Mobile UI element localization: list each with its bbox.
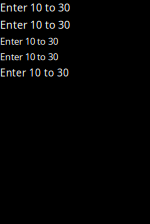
staticText: Enter 10 to 30 bbox=[0, 66, 69, 79]
staticText: Enter 10 to 30 bbox=[0, 0, 70, 14]
staticText: Enter 10 to 30 bbox=[0, 17, 70, 32]
staticText: Enter 10 to 30 bbox=[0, 35, 58, 47]
staticText: Enter 10 to 30 bbox=[0, 50, 58, 63]
